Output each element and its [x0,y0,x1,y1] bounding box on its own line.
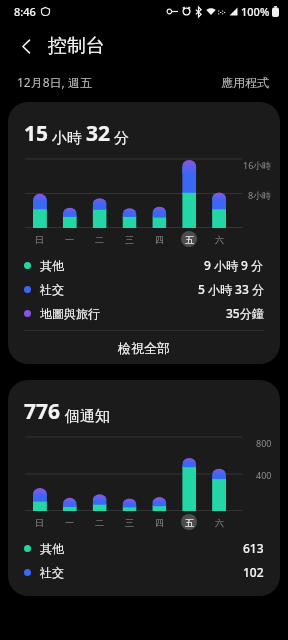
staticText: 12月8日, 週五 [17,74,92,90]
staticText: 二 [95,234,104,245]
button[interactable]: 15 [8,102,280,364]
staticText: 9 小時 9 分 [204,257,264,273]
staticText: 100% [241,4,270,19]
button[interactable]: Back [11,31,41,61]
staticText: 四 [155,234,164,245]
staticText: 8:46 [14,4,36,19]
button[interactable]: 其他 [8,536,280,560]
staticText: 個通知 [65,407,110,426]
staticText: 社交 [40,282,64,297]
staticText: 四 [155,517,164,528]
staticText: 35分鐘 [226,305,264,321]
staticText: 日 [35,517,44,528]
staticText: 613 [243,540,264,556]
button[interactable]: 地圖與旅行 [8,301,280,325]
staticText: 776 [24,397,61,426]
staticText: 8小時 [248,189,272,201]
staticText: 32 [86,119,111,148]
staticText: 三 [125,234,134,245]
staticText: 一 [65,234,74,245]
staticText: 三 [125,517,134,528]
staticText: 分 [114,129,129,148]
staticText: 5 小時 33 分 [198,281,264,297]
staticText: 地圖與旅行 [40,306,100,321]
staticText: 檢視全部 [118,340,170,356]
button[interactable]: 其他 [8,253,280,277]
staticText: 小時 [52,129,82,148]
staticText: 其他 [40,258,64,273]
staticText: 六 [215,234,224,245]
staticText: 二 [95,517,104,528]
button[interactable]: 776 [8,380,280,596]
staticText: 五 [185,517,194,528]
staticText: 102 [243,564,264,580]
staticText: 應用程式 [221,75,269,90]
staticText: 400 [256,469,272,481]
staticText: 五 [185,234,194,245]
staticText: 日 [35,234,44,245]
button[interactable]: 社交 [8,277,280,301]
staticText: 社交 [40,565,64,580]
button[interactable]: 應用程式 [219,73,271,92]
staticText: 六 [215,517,224,528]
staticText: 15 [24,119,49,148]
staticText: 控制台 [48,34,105,58]
staticText: 其他 [40,541,64,556]
staticText: 16小時 [243,159,272,171]
button[interactable]: 檢視全部 [8,331,280,364]
staticText: 800 [256,437,272,449]
staticText: 一 [65,517,74,528]
button[interactable]: 社交 [8,560,280,584]
